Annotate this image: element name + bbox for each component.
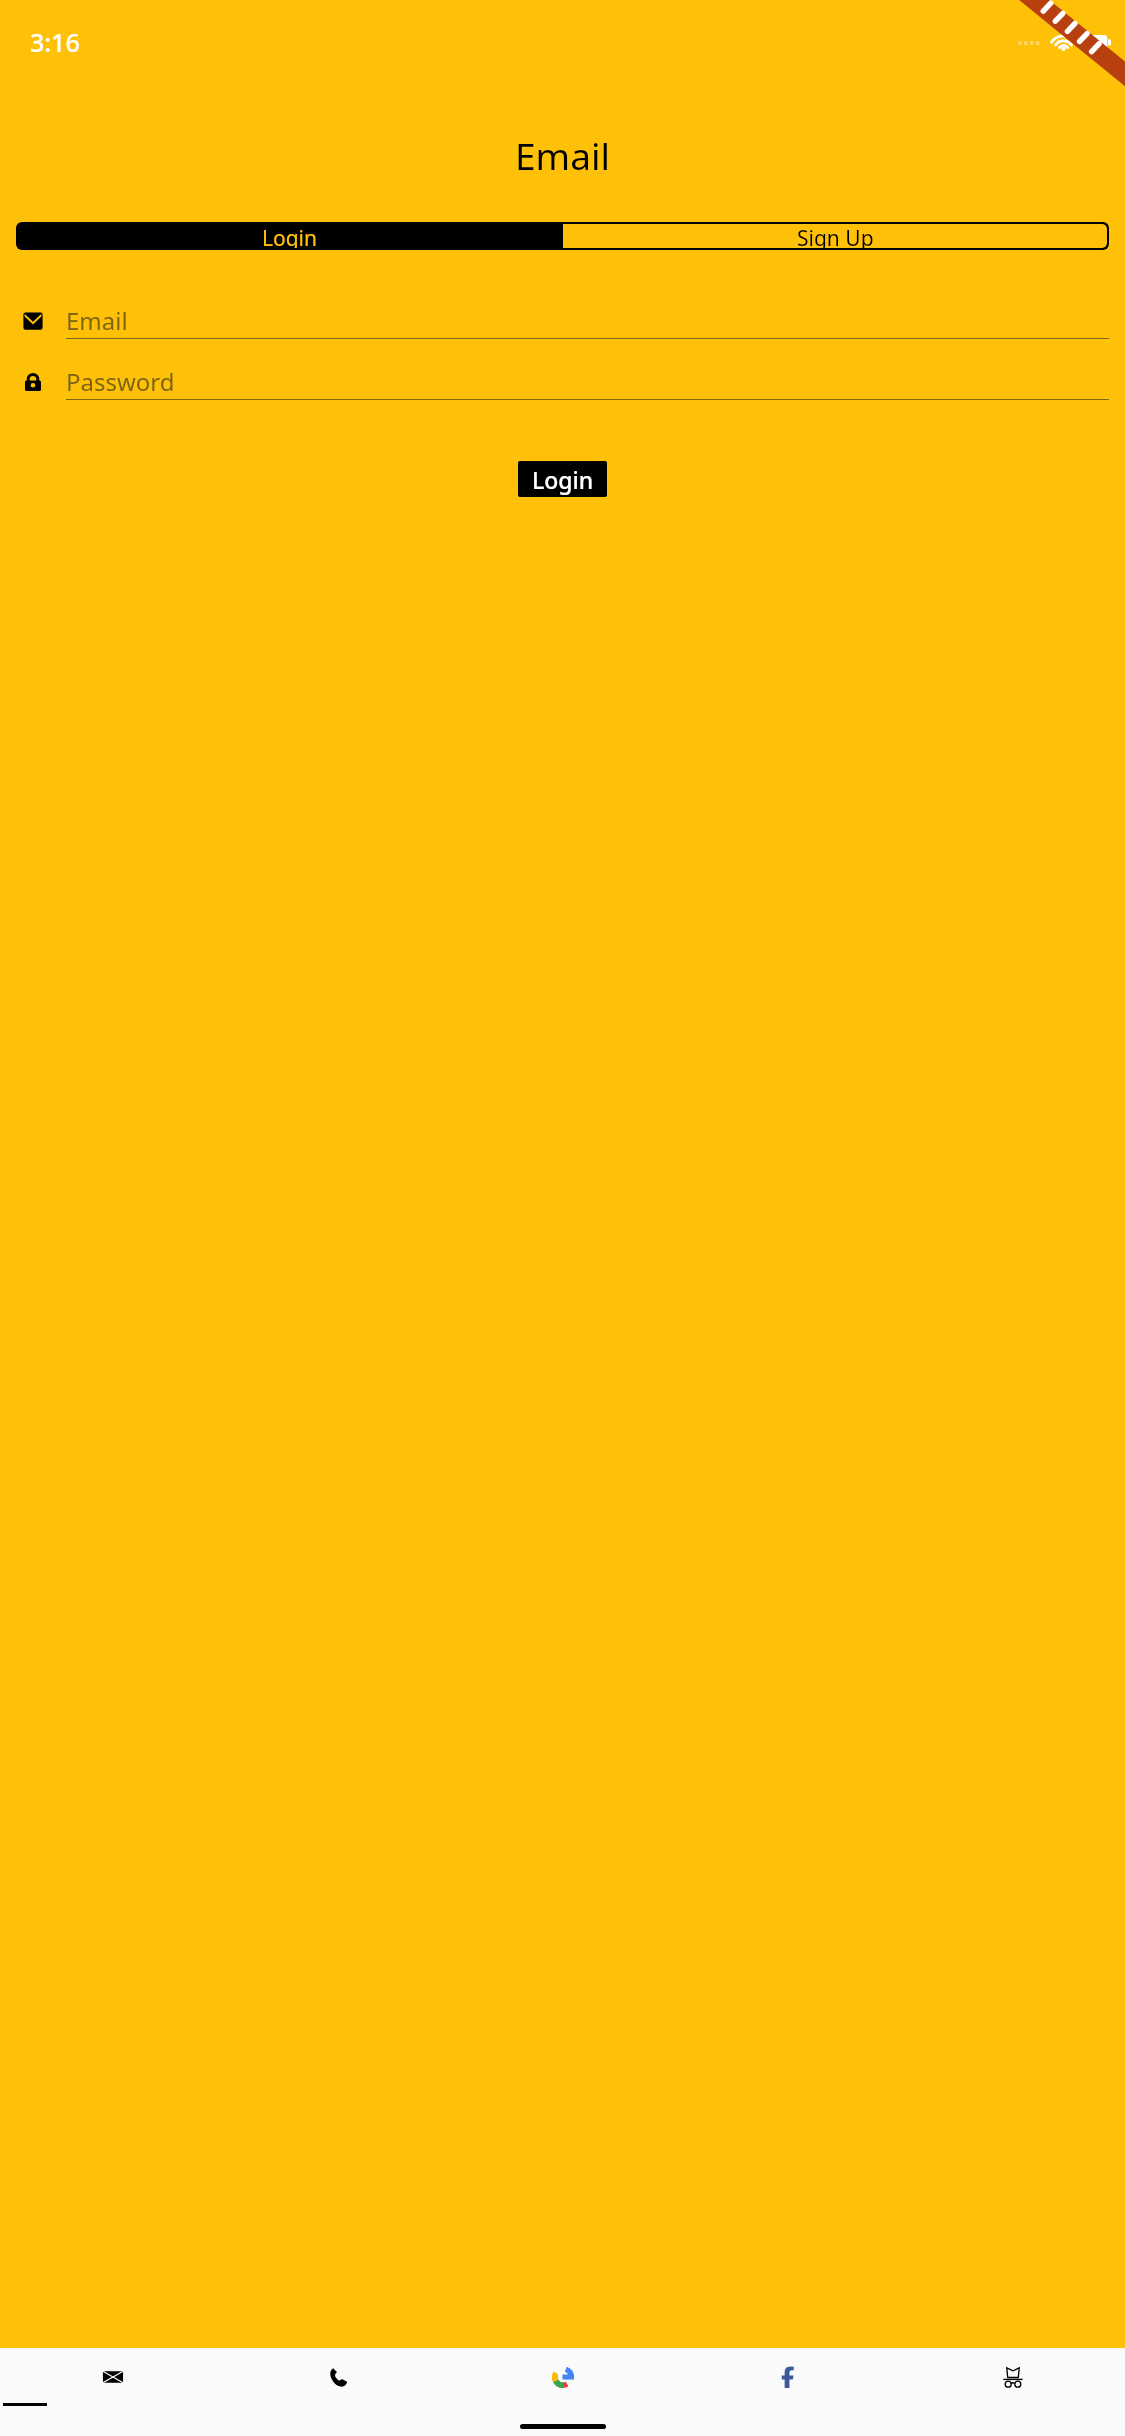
button[interactable]: Login xyxy=(518,461,607,497)
button[interactable]: Login xyxy=(18,224,561,248)
button[interactable]: Phone xyxy=(225,2348,450,2406)
staticText: Email xyxy=(66,304,128,337)
staticText: Login xyxy=(262,224,318,248)
button[interactable]: Incognito xyxy=(900,2348,1125,2406)
staticText: Password xyxy=(66,365,175,398)
button[interactable]: Password xyxy=(0,357,1125,406)
staticText: Email xyxy=(515,130,611,180)
button[interactable]: Email xyxy=(0,2348,225,2406)
button[interactable]: Sign Up xyxy=(563,224,1107,248)
button[interactable]: Email xyxy=(0,296,1125,345)
button[interactable]: Facebook xyxy=(675,2348,900,2406)
staticText: Sign Up xyxy=(797,224,874,248)
button[interactable]: Google xyxy=(450,2348,675,2406)
staticText: Login xyxy=(532,464,594,495)
staticText: 3:16 xyxy=(30,25,80,59)
